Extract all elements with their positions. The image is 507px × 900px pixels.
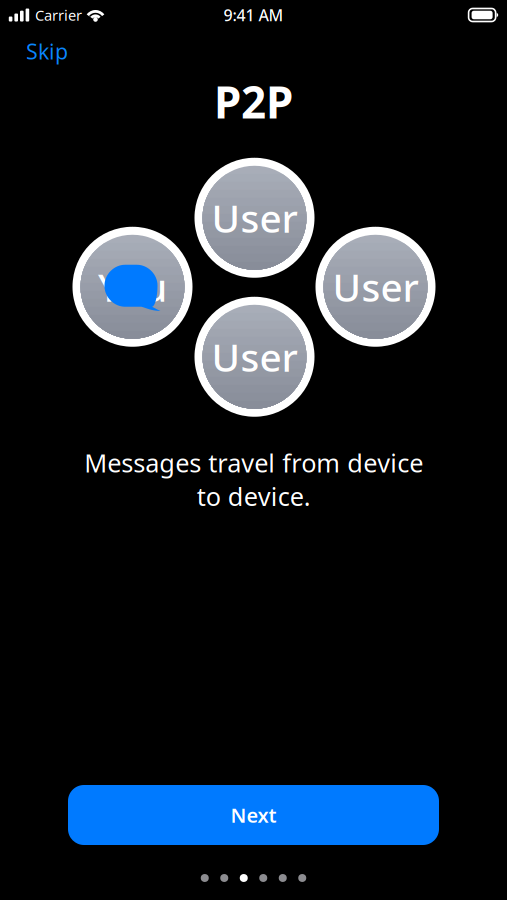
button[interactable]: Page 3 of 6	[201, 845, 306, 900]
button[interactable]: Next	[68, 785, 439, 845]
staticText: You	[98, 261, 167, 312]
staticText: User	[332, 261, 418, 312]
button[interactable]: Skip	[18, 32, 76, 70]
staticText: Next	[230, 802, 276, 828]
staticText: User	[211, 331, 297, 382]
staticText: P2P	[214, 72, 293, 131]
staticText: Messages travel from device to device.	[84, 446, 423, 513]
staticText: User	[211, 192, 297, 243]
staticText: Carrier	[35, 5, 82, 25]
staticText: 9:41 AM	[223, 4, 283, 26]
staticText: Skip	[26, 37, 68, 65]
